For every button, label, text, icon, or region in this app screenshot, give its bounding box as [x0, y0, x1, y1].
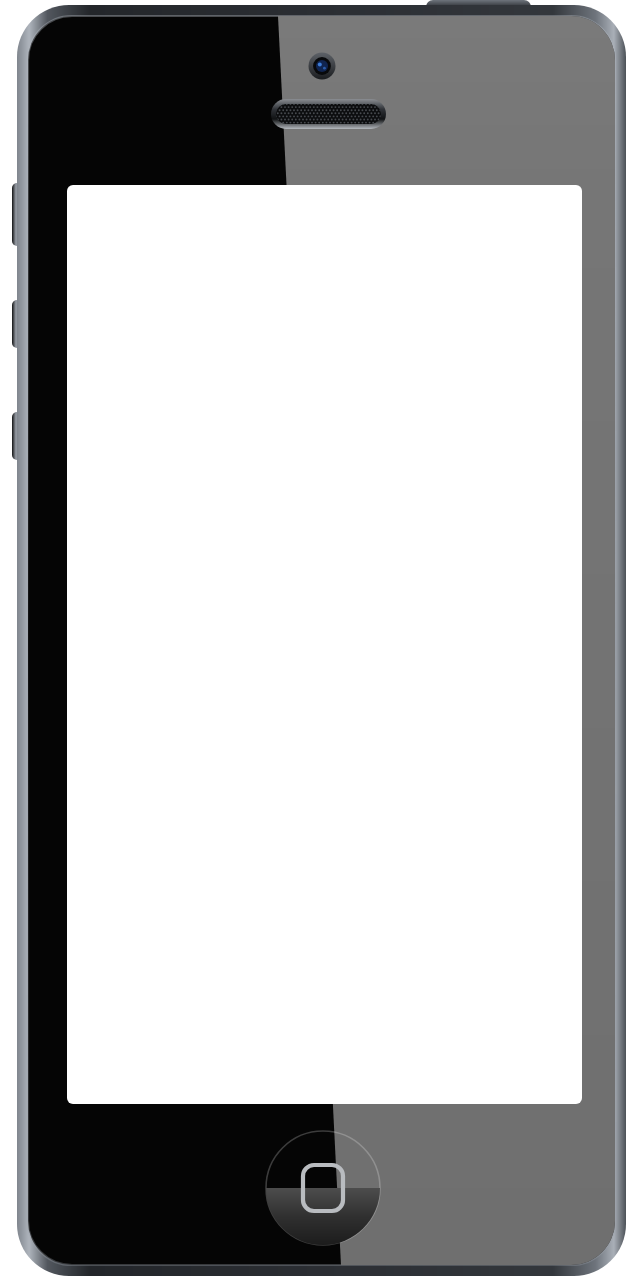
- button[interactable]: iPhone device mockup with blank white sc…: [0, 0, 640, 1280]
